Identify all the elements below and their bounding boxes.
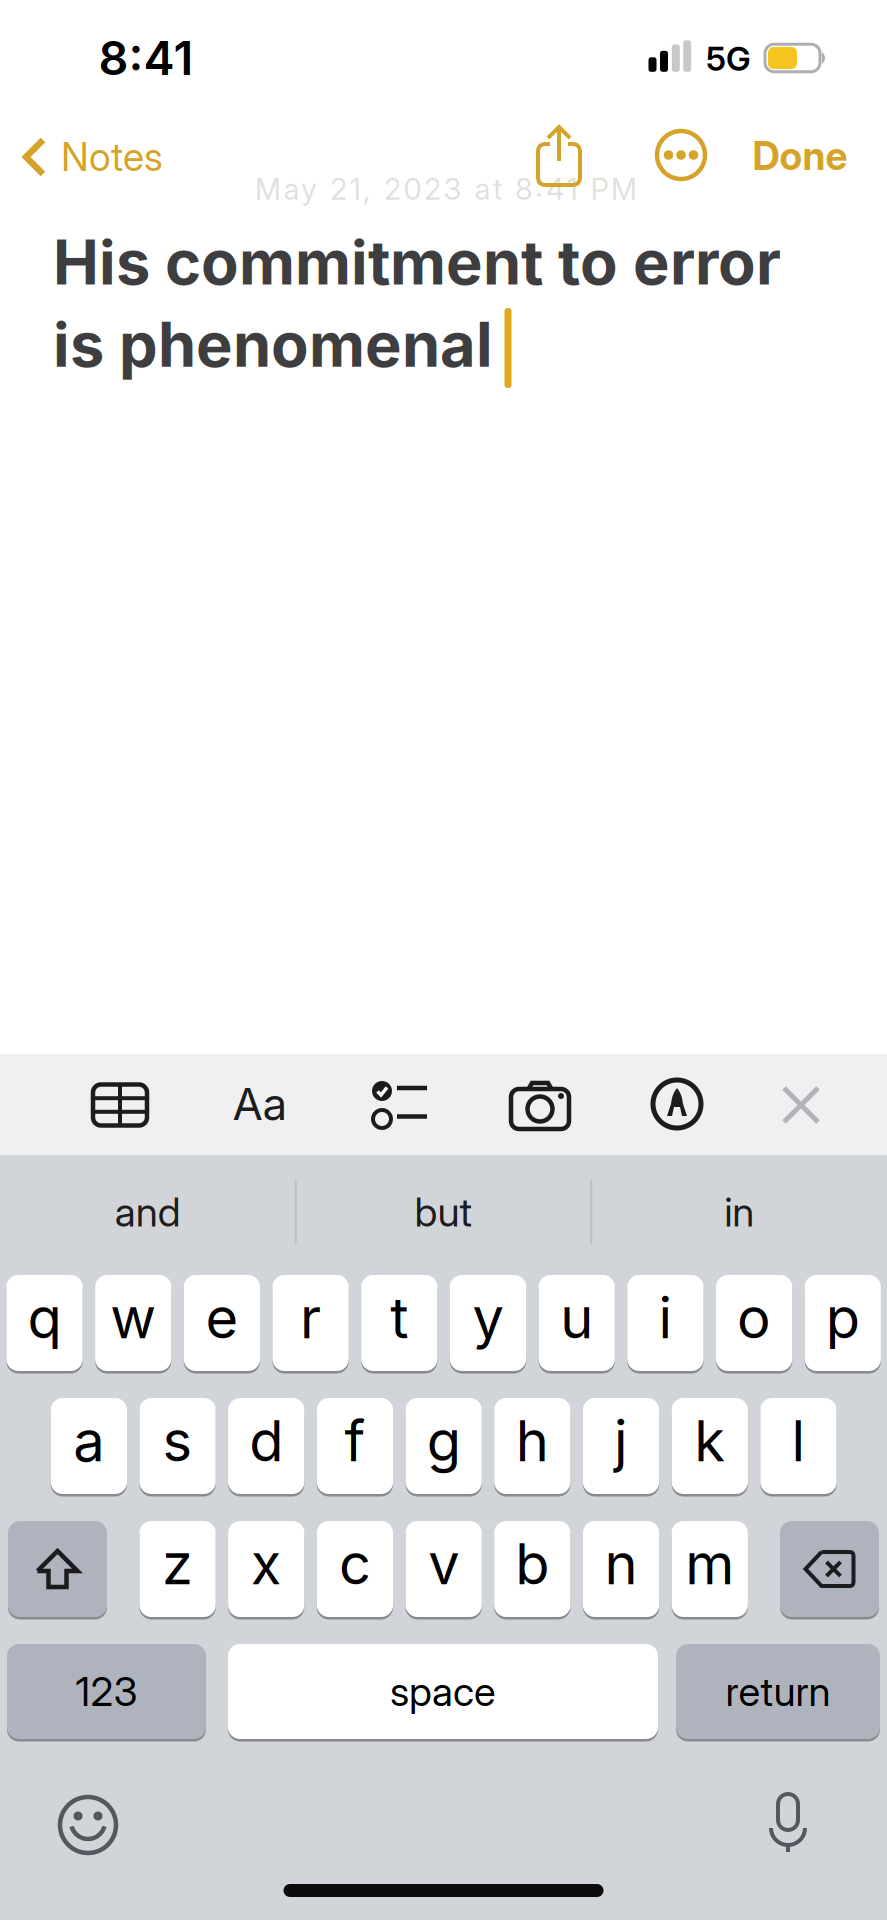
- button[interactable]: z: [139, 1521, 216, 1617]
- button[interactable]: t: [361, 1275, 437, 1371]
- staticText: v: [428, 1531, 459, 1597]
- button[interactable]: g: [405, 1398, 482, 1494]
- staticText: r: [300, 1285, 321, 1351]
- staticText: i: [658, 1285, 672, 1351]
- button[interactable]: r: [272, 1275, 349, 1371]
- button[interactable]: q: [6, 1275, 83, 1371]
- staticText: is phenomenal: [53, 308, 493, 381]
- staticText: c: [339, 1531, 371, 1597]
- staticText: j: [614, 1408, 628, 1474]
- staticText: s: [163, 1408, 193, 1474]
- button[interactable]: a: [51, 1398, 127, 1494]
- staticText: x: [251, 1531, 282, 1597]
- button[interactable]: o: [716, 1275, 792, 1371]
- button[interactable]: e: [184, 1275, 260, 1371]
- staticText: o: [737, 1285, 771, 1351]
- button[interactable]: Delete: [780, 1521, 879, 1617]
- staticText: k: [694, 1408, 725, 1474]
- button[interactable]: return: [676, 1644, 880, 1739]
- staticText: h: [516, 1408, 549, 1474]
- button[interactable]: i: [627, 1275, 703, 1371]
- button[interactable]: k: [672, 1398, 748, 1494]
- button[interactable]: Format: [232, 1078, 287, 1130]
- staticText: 123: [75, 1668, 137, 1715]
- button[interactable]: m: [672, 1521, 748, 1617]
- button[interactable]: Dictate: [764, 1792, 812, 1854]
- button[interactable]: y: [450, 1275, 526, 1371]
- staticText: e: [205, 1285, 238, 1351]
- button[interactable]: w: [95, 1275, 171, 1371]
- button[interactable]: u: [538, 1275, 615, 1371]
- staticText: Done: [752, 133, 847, 179]
- staticText: g: [427, 1408, 461, 1474]
- button[interactable]: but: [303, 1167, 583, 1257]
- button[interactable]: Insert table: [91, 1082, 149, 1128]
- button[interactable]: Emoji: [60, 1797, 116, 1853]
- button[interactable]: and: [8, 1167, 288, 1257]
- button[interactable]: b: [494, 1521, 570, 1617]
- staticText: 5G: [706, 39, 751, 78]
- staticText: l: [791, 1408, 805, 1474]
- button[interactable]: j: [583, 1398, 659, 1494]
- button[interactable]: Markup: [653, 1080, 701, 1128]
- staticText: t: [390, 1285, 408, 1351]
- staticText: d: [249, 1408, 283, 1474]
- staticText: Notes: [61, 134, 163, 180]
- staticText: f: [344, 1408, 365, 1474]
- staticText: and: [115, 1188, 181, 1236]
- button[interactable]: h: [494, 1398, 570, 1494]
- staticText: a: [73, 1408, 104, 1474]
- button[interactable]: Shift: [8, 1521, 107, 1617]
- staticText: Aa: [232, 1078, 287, 1130]
- button[interactable]: d: [228, 1398, 304, 1494]
- button[interactable]: 123: [7, 1644, 206, 1739]
- button[interactable]: Done: [752, 133, 847, 179]
- button[interactable]: x: [228, 1521, 304, 1617]
- staticText: but: [414, 1188, 472, 1236]
- button[interactable]: More: [655, 129, 707, 181]
- button[interactable]: Back to Notes: [21, 134, 163, 180]
- staticText: w: [110, 1285, 156, 1351]
- button[interactable]: n: [583, 1521, 659, 1617]
- button[interactable]: Camera: [508, 1079, 572, 1131]
- staticText: u: [560, 1285, 593, 1351]
- button[interactable]: c: [317, 1521, 393, 1617]
- staticText: His commitment to error: [53, 226, 781, 298]
- staticText: May 21, 2023 at 8:41 PM: [255, 172, 637, 206]
- staticText: b: [515, 1531, 549, 1597]
- staticText: z: [162, 1531, 193, 1597]
- button[interactable]: in: [599, 1167, 879, 1257]
- staticText: 8:41: [98, 30, 193, 86]
- staticText: return: [725, 1668, 830, 1715]
- button[interactable]: Dismiss keyboard: [781, 1085, 821, 1125]
- staticText: space: [390, 1668, 496, 1715]
- staticText: q: [27, 1285, 61, 1351]
- button[interactable]: s: [139, 1398, 216, 1494]
- button[interactable]: v: [405, 1521, 482, 1617]
- staticText: y: [472, 1285, 503, 1351]
- button[interactable]: Share: [535, 123, 583, 187]
- staticText: m: [685, 1531, 734, 1597]
- button[interactable]: Checklist: [372, 1081, 428, 1129]
- staticText: n: [604, 1531, 637, 1597]
- button[interactable]: p: [805, 1275, 881, 1371]
- button[interactable]: space: [228, 1644, 658, 1739]
- button[interactable]: f: [317, 1398, 393, 1494]
- staticText: in: [724, 1188, 754, 1236]
- staticText: p: [826, 1285, 860, 1351]
- button[interactable]: l: [760, 1398, 837, 1494]
